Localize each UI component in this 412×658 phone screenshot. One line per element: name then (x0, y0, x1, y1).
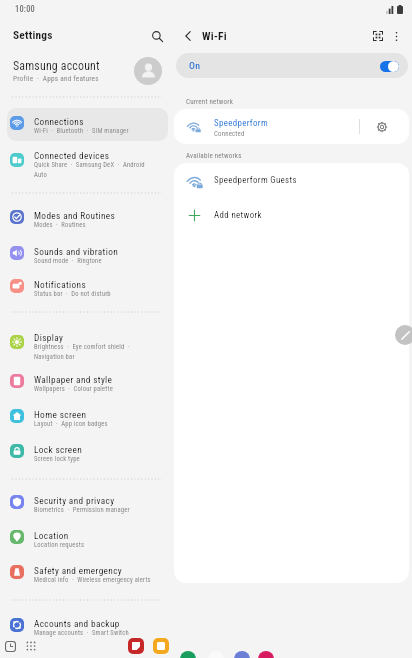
button[interactable]: Wallpaper and style (7, 366, 168, 399)
staticText: Medical info · Wireless emergency alerts (34, 576, 156, 584)
staticText: Lock screen (34, 444, 83, 455)
staticText: Home screen (34, 409, 87, 420)
button[interactable]: Speedperform (174, 109, 409, 144)
staticText: Accounts and backup (34, 618, 120, 629)
staticText: Connected devices (34, 150, 110, 161)
staticText: Speedperform (214, 118, 268, 128)
staticText: Manage accounts · Smart Switch (34, 629, 156, 637)
staticText: Add network (214, 210, 262, 220)
button[interactable]: Search (145, 24, 169, 48)
button[interactable]: Speedperform Guests (174, 163, 409, 198)
staticText: Settings (13, 28, 53, 41)
button[interactable]: All apps (23, 638, 39, 654)
staticText: Wi-Fi · Bluetooth · SIM manager (34, 127, 156, 135)
staticText: Samsung account (13, 59, 100, 73)
button[interactable]: Add network (174, 198, 409, 233)
button[interactable]: On (176, 53, 408, 78)
button[interactable]: Safety and emergency (7, 557, 168, 590)
button[interactable]: Connected devices (7, 142, 168, 182)
button[interactable]: Sounds and vibration (7, 238, 168, 271)
staticText: Quick Share · Samsung DeX · Android Auto (34, 161, 156, 178)
staticText: Brightness · Eye comfort shield · Naviga… (34, 343, 156, 360)
staticText: Wi-Fi (202, 29, 227, 42)
button[interactable]: Notifications (7, 271, 168, 304)
button[interactable]: Scan QR code (366, 24, 390, 48)
staticText: Display (34, 332, 64, 343)
staticText: Location requests (34, 541, 156, 549)
button[interactable]: Connections (7, 108, 168, 141)
staticText: Biometrics · Permission manager (34, 506, 156, 514)
button[interactable]: Home screen (7, 401, 168, 434)
staticText: Connections (34, 116, 84, 127)
button[interactable]: Recents (2, 638, 18, 654)
staticText: Modes and Routines (34, 210, 116, 221)
staticText: Available networks (186, 152, 242, 160)
staticText: On (189, 60, 201, 71)
button[interactable]: Samsung account (0, 55, 174, 90)
staticText: Sound mode · Ringtone (34, 257, 156, 265)
button[interactable]: Back (176, 24, 200, 48)
staticText: Security and privacy (34, 495, 115, 506)
staticText: Speedperform Guests (214, 175, 297, 185)
button[interactable]: Modes and Routines (7, 202, 168, 235)
staticText: Layout · App icon badges (34, 420, 156, 428)
staticText: Screen lock type (34, 455, 156, 463)
button[interactable]: Notes app (128, 638, 144, 654)
button[interactable]: Accounts and backup (7, 610, 168, 643)
staticText: Location (34, 530, 69, 541)
button[interactable]: Location (7, 522, 168, 555)
button[interactable]: Edit (395, 325, 412, 345)
staticText: Sounds and vibration (34, 246, 119, 257)
staticText: Status bar · Do not disturb (34, 290, 156, 298)
staticText: 10:00 (15, 4, 35, 14)
staticText: Current network (186, 98, 233, 106)
button[interactable]: More options (384, 24, 408, 48)
staticText: Wallpapers · Colour palette (34, 385, 156, 393)
button[interactable]: Network settings (372, 117, 391, 136)
button[interactable]: Display (7, 324, 168, 364)
staticText: Safety and emergency (34, 565, 122, 576)
staticText: Connected (214, 130, 245, 138)
staticText: Notifications (34, 279, 86, 290)
button[interactable]: Lock screen (7, 436, 168, 469)
button[interactable]: Security and privacy (7, 487, 168, 520)
staticText: Modes · Routines (34, 221, 156, 229)
staticText: Profile · Apps and features (13, 74, 99, 83)
staticText: Wallpaper and style (34, 374, 113, 385)
button[interactable]: My Files (153, 638, 169, 654)
